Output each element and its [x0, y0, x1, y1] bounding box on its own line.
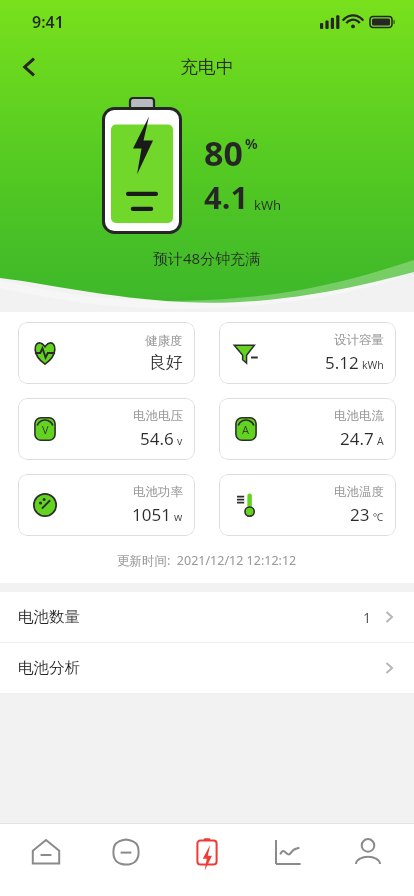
- button[interactable]: 电池温度: [219, 474, 396, 536]
- staticText: 更新时间: 2021/12/12 12:12:12: [117, 552, 297, 569]
- button[interactable]: Statistics: [253, 824, 323, 880]
- staticText: A: [242, 422, 250, 437]
- button[interactable]: V: [18, 398, 195, 460]
- staticText: 良好: [149, 352, 183, 373]
- staticText: 54.6: [140, 427, 174, 450]
- staticText: 5.12: [325, 351, 359, 374]
- staticText: w: [174, 510, 183, 524]
- button[interactable]: Devices: [91, 824, 161, 880]
- staticText: kWh: [362, 358, 384, 372]
- staticText: 电池电压: [133, 408, 183, 424]
- staticText: 电池电流: [334, 408, 384, 424]
- staticText: 健康度: [145, 333, 183, 349]
- staticText: kWh: [254, 196, 282, 214]
- staticText: 电池分析: [18, 658, 80, 678]
- button[interactable]: 电池分析: [0, 643, 414, 693]
- staticText: 充电中: [180, 56, 234, 79]
- button[interactable]: 健康度: [18, 322, 195, 384]
- staticText: %: [245, 134, 258, 153]
- button[interactable]: 设计容量: [219, 322, 396, 384]
- staticText: 预计48分钟充满: [153, 248, 261, 268]
- button[interactable]: 电池功率: [18, 474, 195, 536]
- button[interactable]: Profile: [333, 824, 403, 880]
- staticText: 1: [363, 608, 372, 627]
- staticText: 24.7: [340, 427, 374, 450]
- staticText: 9:41: [32, 11, 64, 33]
- staticText: 电池温度: [334, 484, 384, 500]
- staticText: A: [377, 434, 384, 448]
- staticText: V: [42, 422, 49, 437]
- staticText: 设计容量: [334, 332, 384, 348]
- staticText: 电池功率: [133, 484, 183, 500]
- button[interactable]: Home: [11, 824, 81, 880]
- button[interactable]: Battery: [172, 824, 242, 880]
- button[interactable]: Back: [8, 45, 52, 89]
- staticText: 23: [350, 503, 370, 526]
- staticText: 电池数量: [18, 607, 80, 627]
- button[interactable]: 电池数量: [0, 592, 414, 642]
- staticText: 4.1: [204, 176, 249, 218]
- staticText: 1051: [132, 503, 171, 526]
- button[interactable]: A: [219, 398, 396, 460]
- staticText: v: [177, 434, 183, 448]
- staticText: ℃: [373, 510, 384, 524]
- staticText: 80: [204, 130, 243, 176]
